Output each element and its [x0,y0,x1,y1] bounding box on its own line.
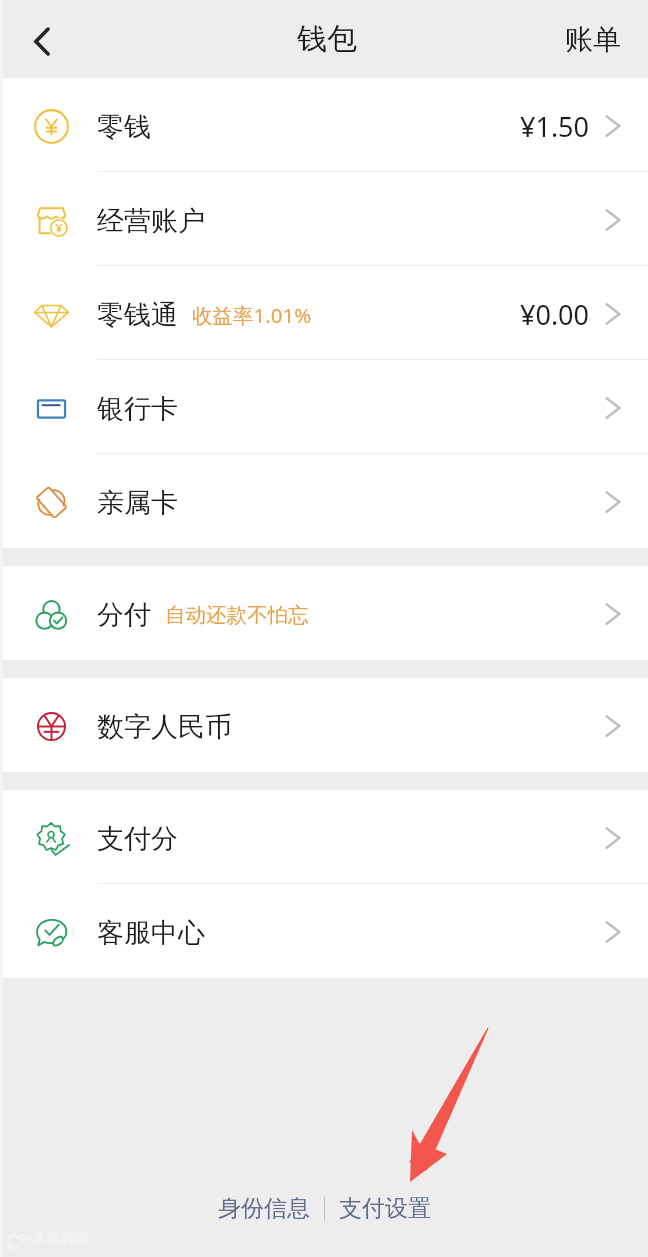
staticText: 账单 [565,22,621,57]
button[interactable]: 银行卡 [0,360,648,454]
button[interactable]: 数字人民币 [0,678,648,772]
staticText: 身份信息 [218,1194,310,1223]
staticText: 零钱 [97,110,151,144]
staticText: 银行卡 [97,392,178,426]
staticText: 支付分 [97,822,178,856]
button[interactable]: 零钱 [0,78,648,172]
button[interactable]: 分付 [0,566,648,660]
button[interactable]: Back [0,0,80,78]
staticText: 钱包 [297,20,357,58]
staticText: 收益率1.01% [192,301,312,329]
button[interactable]: 账单 [541,8,648,71]
button[interactable]: 零钱通 [0,266,648,360]
staticText: ¥1.50 [520,108,590,145]
button[interactable]: 身份信息 [204,1186,324,1231]
button[interactable]: 客服中心 [0,884,648,978]
button[interactable]: 亲属卡 [0,454,648,548]
staticText: 客服中心 [97,916,205,950]
staticText: 亲属卡 [97,486,178,520]
staticText: 数字人民币 [97,710,232,744]
button[interactable]: 支付设置 [325,1186,445,1231]
staticText: 经营账户 [97,204,205,238]
staticText: ¥0.00 [520,296,590,333]
staticText: 分付 [97,598,151,632]
staticText: 零钱通 [97,298,178,332]
staticText: 自动还款不怕忘 [165,602,309,628]
button[interactable]: 经营账户 [0,172,648,266]
button[interactable]: 支付分 [0,790,648,884]
staticText: 支付设置 [339,1194,431,1223]
